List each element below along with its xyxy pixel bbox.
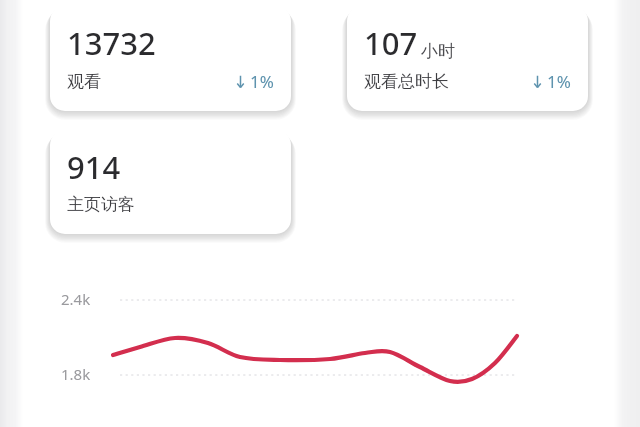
button[interactable]: 107 — [347, 6, 588, 111]
other: Decrease 1% — [533, 70, 571, 93]
button[interactable]: 914 — [50, 130, 291, 234]
staticText: 107 — [364, 22, 418, 64]
staticText: 1% — [547, 70, 571, 93]
staticText: 2.4k — [61, 289, 91, 309]
staticText: 小时 — [421, 41, 455, 62]
staticText: 观看总时长 — [364, 71, 449, 92]
other: Decrease 1% — [236, 70, 274, 93]
staticText: 1.8k — [61, 364, 91, 384]
button[interactable]: 13732 — [50, 6, 291, 111]
staticText: 观看 — [67, 71, 101, 92]
staticText: 1% — [250, 70, 274, 93]
staticText: 主页访客 — [67, 194, 135, 215]
staticText: 914 — [67, 146, 121, 188]
staticText: 13732 — [67, 22, 156, 64]
